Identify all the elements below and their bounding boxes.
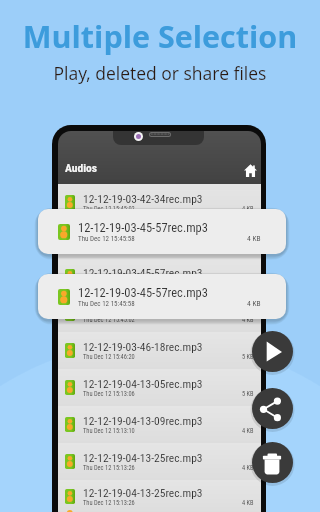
button[interactable]: 12-12-19-03-45-57rec.mp3 (38, 209, 286, 254)
staticText: 4 KB (242, 499, 254, 507)
button[interactable]: 12-12-19-04-13-09rec.mp3 (58, 406, 261, 443)
staticText: Multiple Selection (0, 15, 320, 57)
staticText: 12-12-19-03-45-57rec.mp3 (78, 220, 208, 235)
staticText: Thu Dec 12 15:45:02 (83, 316, 135, 324)
staticText: Thu Dec 12 15:13:26 (83, 499, 135, 507)
staticText: Thu Dec 12 15:45:02 (83, 205, 135, 213)
button[interactable]: Play (252, 331, 293, 372)
staticText: Thu Dec 12 15:45:58 (78, 235, 135, 243)
staticText: 4 KB (242, 205, 254, 213)
staticText: 12-12-19-04-13-05rec.mp3 (83, 377, 203, 390)
staticText: 4 KB (242, 464, 254, 472)
staticText: Thu Dec 12 15:13:10 (83, 427, 135, 435)
button[interactable]: 12-12-19-04-13-25rec.mp3 (58, 480, 261, 512)
staticText: 12-12-19-03-45-57rec.mp3 (83, 303, 203, 316)
button[interactable]: Delete (252, 442, 293, 483)
staticText: Thu Dec 12 15:13:06 (83, 390, 135, 398)
staticText: Thu Dec 12 15:46:20 (83, 353, 135, 361)
button[interactable]: 12-12-19-03-45-57rec.mp3 (58, 295, 261, 332)
button[interactable]: 12-12-19-03-45-57rec.mp3 (38, 274, 286, 319)
staticText: 4 KB (247, 299, 261, 308)
button[interactable]: 12-12-19-03-45-57rec.mp3 (58, 258, 261, 295)
button[interactable]: 12-12-19-04-13-25rec.mp3 (58, 443, 261, 480)
staticText: 4 KB (242, 316, 254, 324)
staticText: 4 KB (247, 234, 261, 243)
staticText: 5 KB (242, 390, 254, 398)
staticText: 4 KB (242, 427, 254, 435)
staticText: Thu Dec 12 15:45:58 (78, 300, 135, 308)
button[interactable]: Home (243, 163, 257, 177)
staticText: Audios (65, 161, 98, 174)
staticText: 12-12-19-03-46-18rec.mp3 (83, 340, 203, 353)
staticText: 12-12-19-04-13-25rec.mp3 (83, 486, 203, 499)
button[interactable]: 12-12-19-03-45-57rec.mp3 (58, 221, 261, 258)
button[interactable]: 12-12-19-03-46-18rec.mp3 (58, 332, 261, 369)
staticText: 12-12-19-03-42-34rec.mp3 (83, 192, 203, 205)
staticText: 12-12-19-04-13-09rec.mp3 (83, 414, 203, 427)
staticText: 5 KB (242, 353, 254, 361)
staticText: 12-12-19-03-45-57rec.mp3 (83, 266, 203, 279)
button[interactable]: 12-12-19-04-13-05rec.mp3 (58, 369, 261, 406)
staticText: 12-12-19-04-13-25rec.mp3 (83, 451, 203, 464)
staticText: 12-12-19-03-45-57rec.mp3 (83, 229, 203, 242)
button[interactable]: Share (252, 388, 293, 429)
staticText: Play, deleted or share files (0, 61, 320, 85)
button[interactable]: 12-12-19-03-42-34rec.mp3 (58, 184, 261, 221)
staticText: Thu Dec 12 15:13:26 (83, 464, 135, 472)
staticText: 12-12-19-03-45-57rec.mp3 (78, 285, 208, 300)
